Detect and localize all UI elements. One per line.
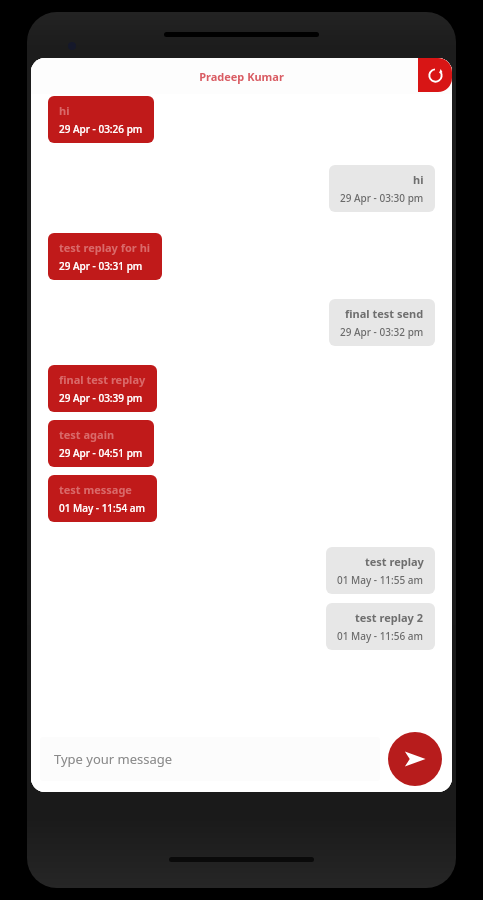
staticText: hi [59, 103, 70, 118]
staticText: 01 May - 11:54 am [59, 501, 146, 515]
staticText: 01 May - 11:55 am [337, 573, 424, 587]
staticText: 29 Apr - 03:26 pm [59, 122, 143, 136]
staticText: 29 Apr - 03:39 pm [59, 391, 143, 405]
staticText: hi [413, 172, 424, 187]
staticText: final test send [345, 306, 424, 321]
staticText: test replay 2 [355, 610, 424, 625]
staticText: 29 Apr - 04:51 pm [59, 446, 143, 460]
staticText: test message [59, 482, 132, 497]
staticText: test replay [365, 554, 424, 569]
staticText: 29 Apr - 03:32 pm [340, 325, 424, 339]
staticText: 29 Apr - 03:31 pm [59, 259, 143, 273]
button[interactable]: hi [329, 165, 435, 212]
staticText: test again [59, 427, 115, 442]
button[interactable]: test again [48, 420, 154, 467]
staticText: 29 Apr - 03:30 pm [340, 191, 424, 205]
staticText: Pradeep Kumar [199, 69, 284, 84]
button[interactable]: test message [48, 475, 157, 522]
button[interactable]: Type your message [40, 737, 380, 781]
button[interactable]: test replay 2 [326, 603, 435, 650]
staticText: 01 May - 11:56 am [337, 629, 424, 643]
button[interactable]: final test send [329, 299, 435, 346]
button[interactable]: hi [48, 96, 154, 143]
button[interactable]: test replay for hi [48, 233, 162, 280]
staticText: final test replay [59, 372, 146, 387]
button[interactable]: Send message [388, 732, 442, 786]
button[interactable]: test replay [326, 547, 435, 594]
button[interactable]: Refresh [418, 58, 452, 92]
staticText: test replay for hi [59, 240, 151, 255]
staticText: Type your message [54, 750, 173, 768]
button[interactable]: final test replay [48, 365, 157, 412]
